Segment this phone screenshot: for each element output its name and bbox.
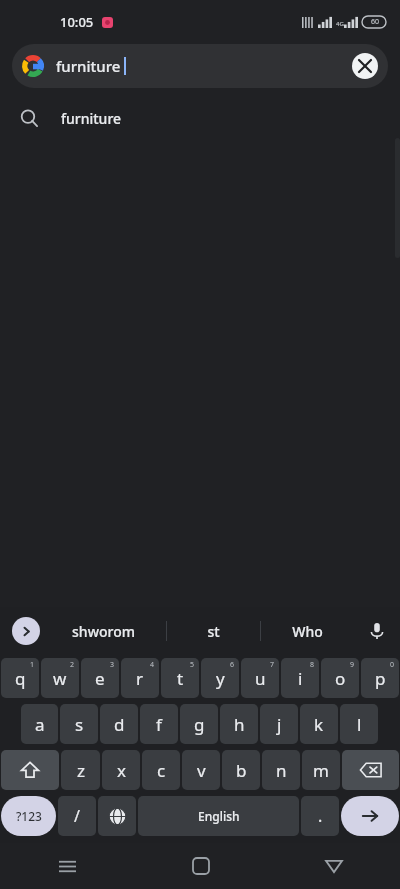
staticText: b <box>236 759 247 782</box>
button[interactable]: ?123 <box>1 796 56 836</box>
staticText: furniture <box>56 56 121 76</box>
staticText: 1 <box>30 660 35 670</box>
button[interactable]: Change language <box>98 796 136 836</box>
button[interactable]: e <box>81 658 119 698</box>
staticText: k <box>314 713 324 736</box>
staticText: p <box>375 667 386 690</box>
button[interactable]: Who <box>261 622 354 641</box>
staticText: l <box>357 713 362 736</box>
staticText: q <box>15 667 26 690</box>
staticText: g <box>194 713 205 736</box>
button[interactable]: Recent apps <box>0 843 134 889</box>
staticText: v <box>197 759 206 782</box>
staticText: 2 <box>70 660 75 670</box>
staticText: u <box>255 667 266 690</box>
staticText: / <box>74 805 80 827</box>
staticText: 7 <box>270 660 275 670</box>
button[interactable]: c <box>142 750 180 790</box>
staticText: s <box>75 713 84 736</box>
staticText: shworom <box>72 622 135 641</box>
button[interactable]: k <box>300 704 338 744</box>
staticText: x <box>117 759 126 782</box>
staticText: i <box>298 667 303 690</box>
staticText: z <box>77 759 85 782</box>
staticText: t <box>177 667 184 690</box>
button[interactable]: furniture <box>0 98 400 138</box>
button[interactable]: h <box>220 704 258 744</box>
button[interactable]: q <box>1 658 39 698</box>
button[interactable]: s <box>60 704 98 744</box>
button[interactable]: Search <box>341 796 399 836</box>
button[interactable]: t <box>161 658 199 698</box>
button[interactable]: y <box>201 658 239 698</box>
staticText: e <box>95 667 105 690</box>
staticText: 4 <box>150 660 155 670</box>
staticText: m <box>313 759 329 782</box>
button[interactable]: i <box>281 658 319 698</box>
staticText: y <box>216 667 225 690</box>
staticText: 0 <box>390 660 395 670</box>
button[interactable]: / <box>58 796 96 836</box>
staticText: 60 <box>371 17 380 27</box>
button[interactable]: g <box>180 704 218 744</box>
button[interactable]: j <box>260 704 298 744</box>
staticText: st <box>207 622 220 641</box>
button[interactable]: . <box>301 796 339 836</box>
staticText: furniture <box>61 109 122 128</box>
staticText: . <box>318 805 323 827</box>
button[interactable]: r <box>121 658 159 698</box>
button[interactable]: b <box>222 750 260 790</box>
staticText: o <box>335 667 346 690</box>
staticText: 5 <box>190 660 195 670</box>
button[interactable]: st <box>167 622 260 641</box>
staticText: r <box>136 667 144 690</box>
button[interactable]: Backspace <box>342 750 399 790</box>
button[interactable]: English <box>138 796 299 836</box>
staticText: 4G <box>336 20 344 28</box>
button[interactable]: l <box>340 704 378 744</box>
staticText: ?123 <box>16 808 42 824</box>
staticText: h <box>234 713 245 736</box>
staticText: n <box>276 759 287 782</box>
button[interactable]: a <box>21 704 58 744</box>
button[interactable]: Clear <box>352 53 378 79</box>
staticText: d <box>114 713 125 736</box>
staticText: a <box>35 713 45 736</box>
staticText: 8 <box>310 660 315 670</box>
staticText: Who <box>292 622 323 641</box>
button[interactable]: o <box>321 658 359 698</box>
button[interactable]: shworom <box>40 622 166 641</box>
button[interactable]: x <box>102 750 140 790</box>
staticText: w <box>53 667 67 690</box>
button[interactable]: n <box>262 750 300 790</box>
button[interactable]: p <box>361 658 399 698</box>
button[interactable]: Expand suggestions <box>12 617 40 645</box>
staticText: 6 <box>230 660 235 670</box>
button[interactable]: Home <box>134 843 267 889</box>
staticText: j <box>277 713 282 736</box>
button[interactable]: Back <box>267 843 400 889</box>
staticText: 10:05 <box>60 13 94 31</box>
button[interactable]: w <box>41 658 79 698</box>
button[interactable]: m <box>302 750 340 790</box>
staticText: 3 <box>110 660 115 670</box>
staticText: f <box>156 713 162 736</box>
button[interactable]: u <box>241 658 279 698</box>
staticText: English <box>198 808 240 824</box>
button[interactable]: v <box>182 750 220 790</box>
staticText: c <box>157 759 166 782</box>
button[interactable]: Voice input <box>354 607 400 655</box>
button[interactable]: f <box>140 704 178 744</box>
staticText: 9 <box>350 660 355 670</box>
button[interactable]: z <box>61 750 100 790</box>
button[interactable]: d <box>100 704 138 744</box>
button[interactable]: Shift <box>1 750 59 790</box>
button[interactable]: furniture <box>12 44 388 88</box>
